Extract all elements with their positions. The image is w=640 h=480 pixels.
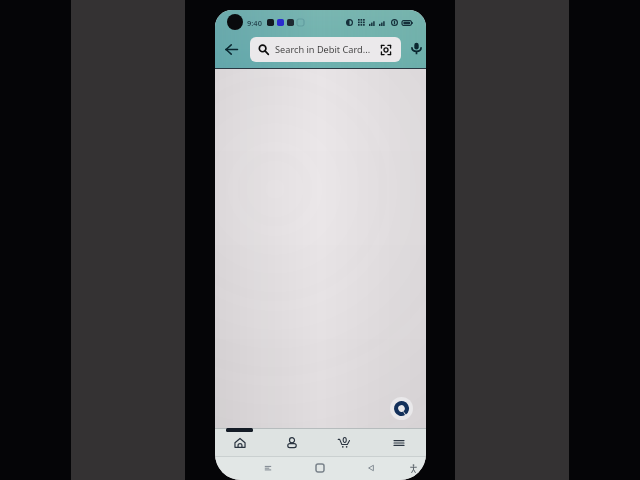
button[interactable]: Accessibility	[403, 456, 423, 480]
button[interactable]: Menu	[376, 432, 422, 454]
staticText: Search in Debit Card...	[275, 43, 380, 56]
button[interactable]: Alexa	[390, 397, 413, 420]
button[interactable]: Cart	[321, 432, 367, 454]
button[interactable]: Recents	[258, 456, 278, 480]
button[interactable]: Voice search	[407, 39, 425, 57]
button[interactable]: Search in Debit Card...	[250, 37, 401, 62]
button[interactable]: Back	[221, 39, 241, 59]
button[interactable]: Home	[217, 432, 263, 454]
staticText: 9:40	[247, 18, 262, 28]
button[interactable]: Account	[269, 432, 315, 454]
button[interactable]: Back	[361, 456, 381, 480]
button[interactable]: Home	[310, 456, 330, 480]
